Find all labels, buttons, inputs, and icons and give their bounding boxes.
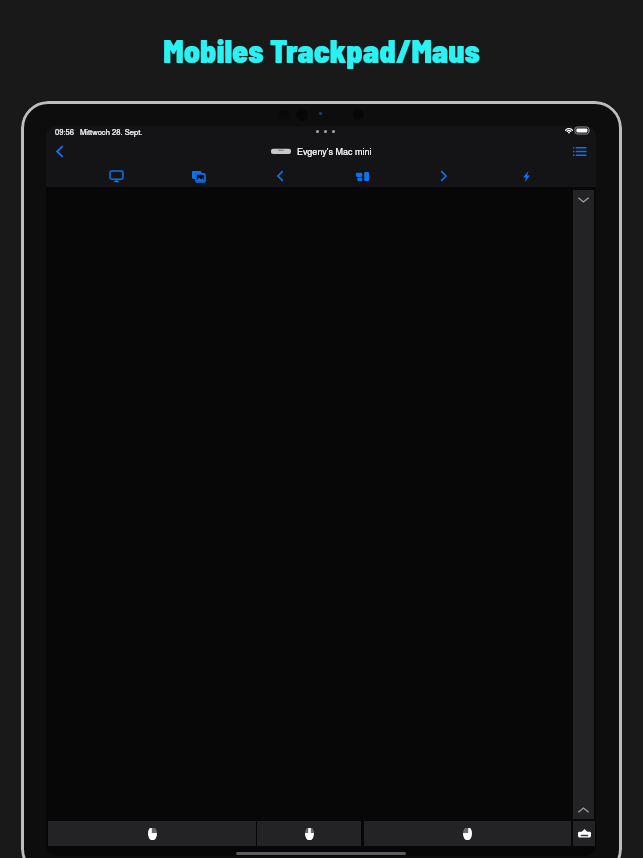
button[interactable]: Previous [266, 165, 294, 187]
button[interactable]: Middle click [257, 821, 361, 846]
button[interactable]: Next [430, 165, 458, 187]
button[interactable]: App Switcher [348, 165, 376, 187]
button[interactable]: Left click [48, 821, 256, 846]
button[interactable]: Display [102, 165, 130, 187]
button[interactable]: Power [512, 165, 540, 187]
button[interactable]: Back [47, 140, 71, 162]
staticText: Evgeny's Mac mini [297, 145, 372, 158]
staticText: 09:56 [55, 126, 74, 137]
button[interactable]: Panel handle [573, 190, 594, 819]
button[interactable]: Media [184, 165, 212, 187]
button[interactable]: Keyboard [573, 821, 595, 846]
button[interactable]: Menu [566, 140, 592, 162]
button[interactable]: Right click [364, 821, 571, 846]
staticText: Mittwoch 28. Sept. [80, 126, 143, 137]
staticText: Mobiles Trackpad/Maus [163, 31, 480, 69]
